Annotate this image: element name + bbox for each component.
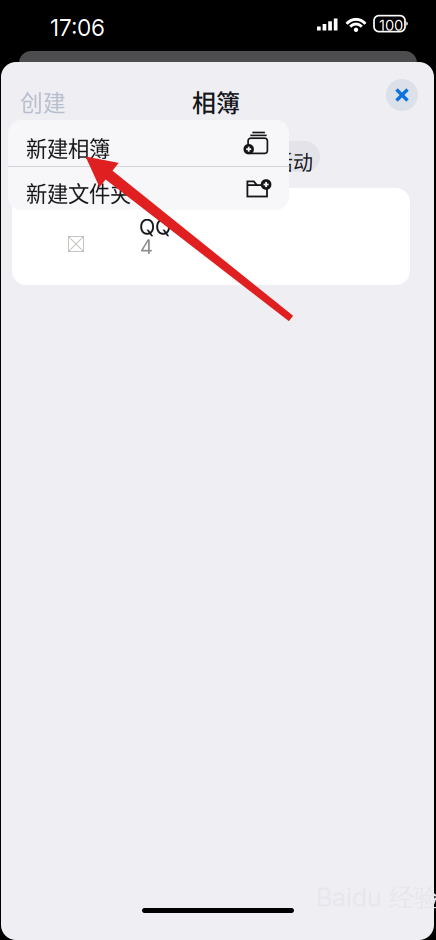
image <box>68 236 84 252</box>
staticText: 新建相簿 <box>26 132 110 163</box>
staticText: 相簿 <box>192 84 240 119</box>
button[interactable]: 活动 <box>248 141 320 172</box>
staticText: 4 <box>140 235 153 259</box>
staticText: 17:06 <box>50 14 105 41</box>
button[interactable]: 创建 <box>13 78 73 125</box>
button[interactable]: 新建文件夹 <box>8 167 289 210</box>
button[interactable]: QQ <box>12 188 410 285</box>
staticText: 100 <box>379 17 403 34</box>
button[interactable]: Close <box>386 79 418 111</box>
staticText: 新建文件夹 <box>26 177 131 208</box>
staticText: 创建 <box>20 85 66 118</box>
staticText: Baidu 经验 <box>316 882 436 914</box>
staticText: QQ <box>139 214 171 240</box>
staticText: 活动 <box>273 147 313 176</box>
button[interactable]: 新建相簿 <box>8 120 289 166</box>
